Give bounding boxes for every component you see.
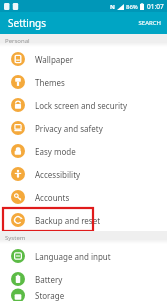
staticText: Accounts	[35, 192, 70, 203]
staticText: Wallpaper	[35, 54, 74, 65]
staticText: Storage	[35, 290, 65, 301]
staticText: Settings	[8, 16, 47, 30]
button[interactable]: Themes	[0, 70, 167, 93]
staticText: SEARCH	[138, 19, 161, 27]
staticText: Language and input	[35, 251, 111, 262]
button[interactable]: Wallpaper	[0, 47, 167, 70]
staticText: Easy mode	[35, 146, 76, 157]
staticText: Personal	[5, 37, 30, 45]
staticText: Themes	[35, 77, 65, 88]
button[interactable]: Privacy and safety	[0, 116, 167, 139]
staticText: Battery	[35, 274, 63, 285]
button[interactable]: Battery	[0, 267, 167, 290]
staticText: N	[110, 3, 115, 11]
staticText: Accessibility	[35, 169, 81, 180]
staticText: System	[5, 234, 26, 242]
staticText: Backup and reset	[35, 215, 101, 226]
staticText: Privacy and safety	[35, 123, 103, 134]
button[interactable]: Backup and reset	[0, 208, 167, 231]
staticText: 01:07	[147, 2, 164, 11]
staticText: 86%	[126, 3, 138, 11]
button[interactable]: Storage	[0, 290, 167, 301]
button[interactable]: Accessibility	[0, 162, 167, 185]
button[interactable]: Language and input	[0, 244, 167, 267]
staticText: Lock screen and security	[35, 100, 127, 111]
button[interactable]: SEARCH	[132, 15, 167, 31]
button[interactable]: Lock screen and security	[0, 93, 167, 116]
button[interactable]: Accounts	[0, 185, 167, 208]
button[interactable]: Easy mode	[0, 139, 167, 162]
